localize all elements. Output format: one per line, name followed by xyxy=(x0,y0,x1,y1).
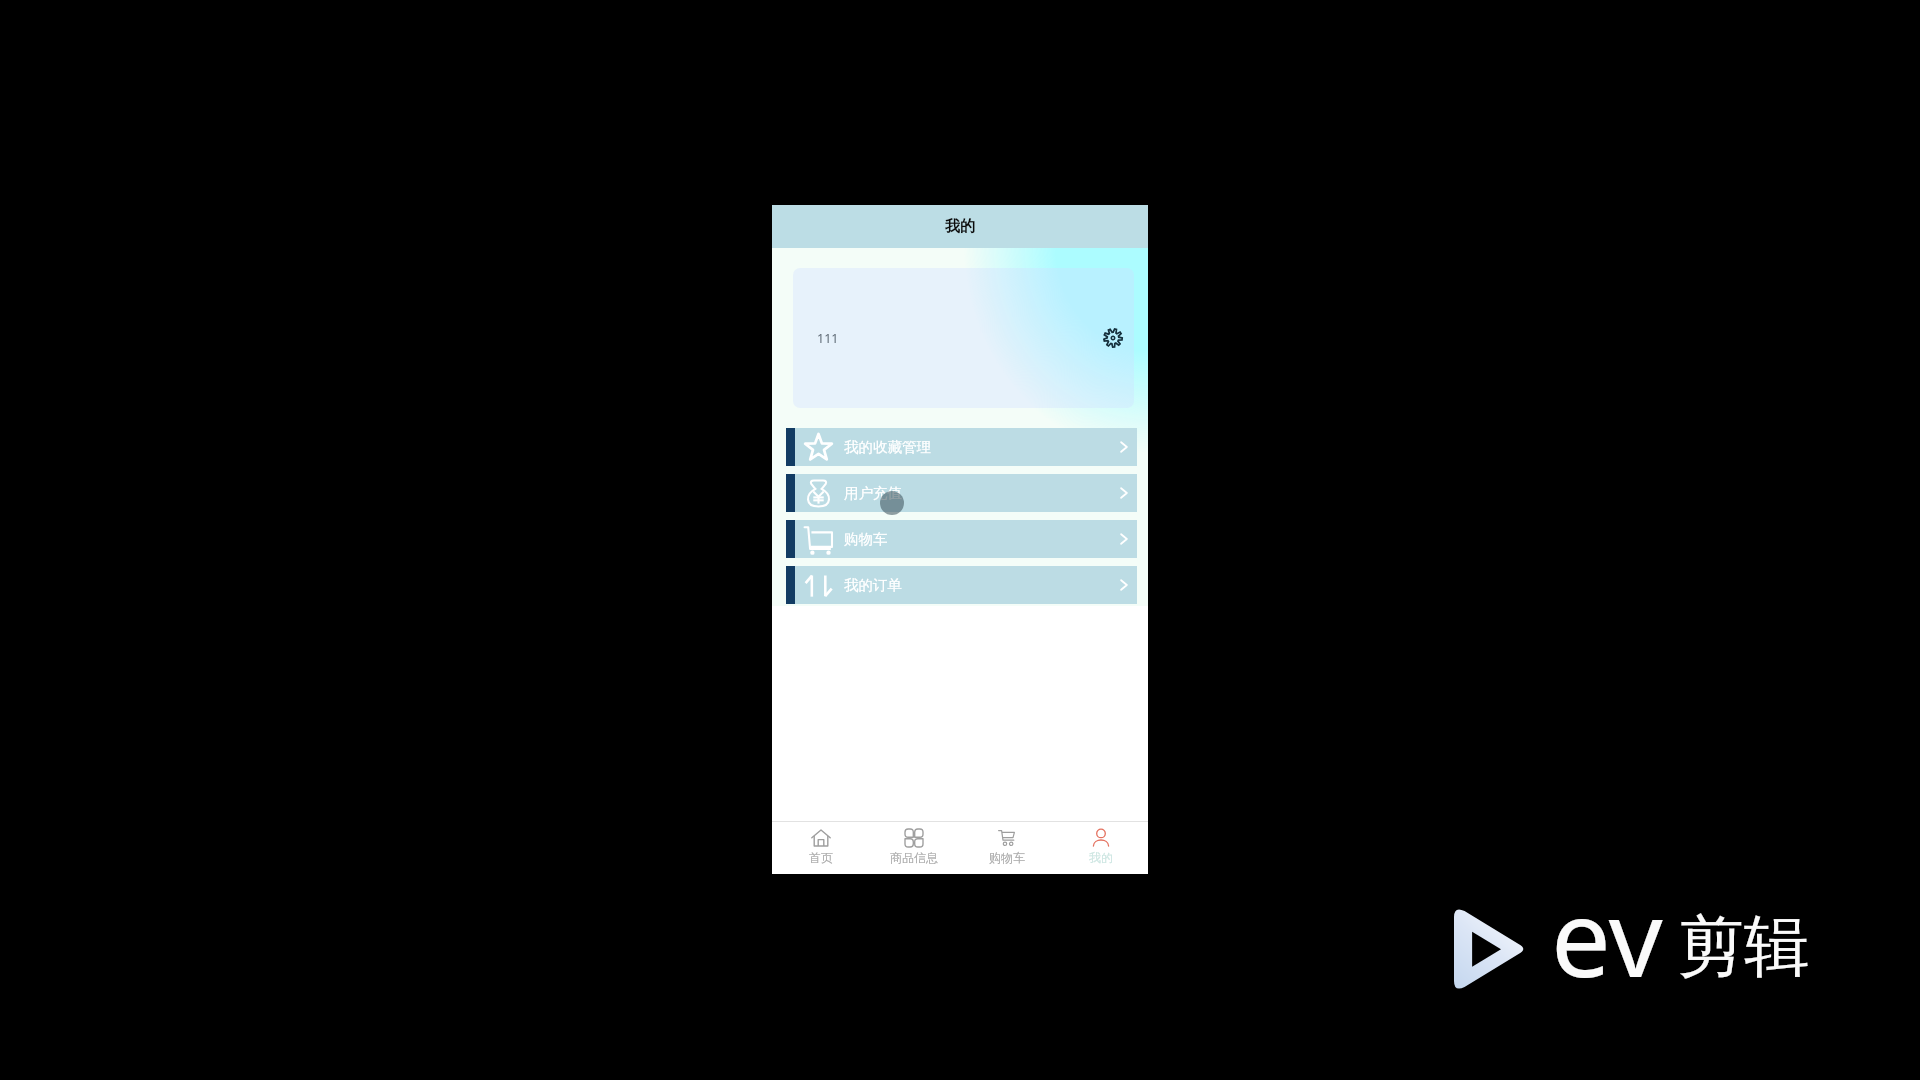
button[interactable]: 首页 xyxy=(774,822,867,874)
staticText: 我的订单 xyxy=(844,576,902,594)
staticText: 我的 xyxy=(945,217,975,236)
button[interactable]: 111 xyxy=(793,268,1134,408)
button[interactable]: 我的 xyxy=(772,205,1148,248)
button[interactable]: 商品信息 xyxy=(867,822,960,874)
button[interactable]: 购物车 xyxy=(960,822,1054,874)
staticText: 购物车 xyxy=(989,850,1025,865)
staticText: 剪辑 xyxy=(1678,905,1810,988)
staticText: 购物车 xyxy=(844,530,888,548)
staticText: 我的收藏管理 xyxy=(844,438,931,456)
button[interactable]: 设置 xyxy=(1103,328,1123,348)
staticText: 111 xyxy=(817,330,839,347)
button[interactable]: 我的订单 xyxy=(786,566,1137,604)
staticText: 首页 xyxy=(809,850,833,865)
staticText: 我的 xyxy=(1089,850,1113,865)
button[interactable]: 购物车 xyxy=(786,520,1137,558)
button[interactable]: 我的收藏管理 xyxy=(786,428,1137,466)
staticText: 商品信息 xyxy=(890,850,938,865)
staticText: ev xyxy=(1551,864,1663,1008)
staticText: 用户充值 xyxy=(844,484,902,502)
button[interactable]: 用户充值 xyxy=(786,474,1137,512)
button[interactable]: 我的 xyxy=(1054,822,1148,874)
